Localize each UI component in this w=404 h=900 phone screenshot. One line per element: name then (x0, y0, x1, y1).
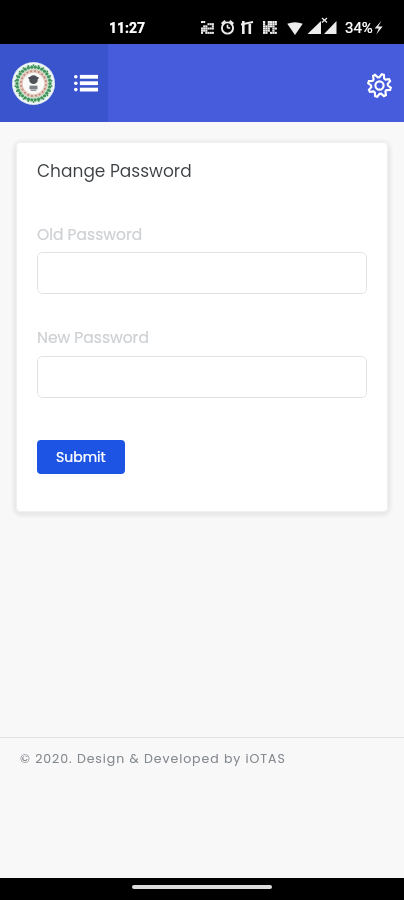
staticText: Submit (56, 447, 106, 467)
staticText: New Password (37, 327, 149, 349)
button[interactable]: Settings (362, 66, 396, 100)
button[interactable]: Password input (37, 356, 367, 398)
button[interactable]: Open navigation menu (71, 68, 101, 98)
button[interactable]: Submit (37, 440, 125, 474)
staticText: 11:27 (109, 20, 146, 36)
staticText: 34% (345, 19, 373, 37)
staticText: © 2020. Design & Developed by iOTAS (20, 750, 286, 767)
staticText: Old Password (37, 224, 143, 246)
staticText: Change Password (37, 159, 192, 183)
button[interactable]: App logo (12, 62, 55, 105)
button[interactable]: Password input (37, 252, 367, 294)
